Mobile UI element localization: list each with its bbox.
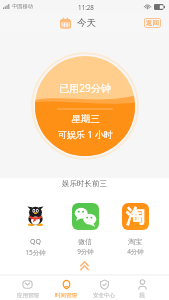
staticText: 我 xyxy=(139,292,145,299)
staticText: QQ xyxy=(30,237,41,247)
button[interactable]: 我 xyxy=(123,276,161,300)
staticText: 中国移动 xyxy=(12,3,33,10)
button[interactable]: 微信 xyxy=(71,203,99,256)
staticText: 返回 xyxy=(146,19,159,27)
button[interactable]: 时间管理 xyxy=(47,276,85,300)
staticText: 时间管理 xyxy=(55,292,77,299)
staticText: 可娱乐 1 小时 xyxy=(58,128,113,140)
button[interactable]: 应用管理 xyxy=(8,276,47,300)
button[interactable]: 今天 xyxy=(60,17,96,29)
staticText: 微信 xyxy=(78,237,92,246)
staticText: 应用管理 xyxy=(17,292,39,299)
staticText: 11:28 xyxy=(78,3,94,11)
staticText: 淘 xyxy=(126,205,145,229)
staticText: 4分钟 xyxy=(127,247,144,256)
staticText: 星期三 xyxy=(71,113,100,125)
staticText: 今天 xyxy=(77,17,96,29)
button[interactable]: 返回 xyxy=(144,18,161,28)
staticText: 娱乐时长前三 xyxy=(0,179,169,188)
button[interactable]: 安全中心 xyxy=(85,276,123,300)
button[interactable]: QQ xyxy=(21,203,49,257)
button[interactable]: 淘 xyxy=(121,203,149,256)
staticText: 安全中心 xyxy=(93,292,115,299)
staticText: 已用29分钟 xyxy=(59,81,111,95)
staticText: 9分钟 xyxy=(77,247,94,256)
staticText: 淘宝 xyxy=(128,237,142,246)
button[interactable]: Expand xyxy=(79,261,90,271)
staticText: 15分钟 xyxy=(25,248,46,257)
